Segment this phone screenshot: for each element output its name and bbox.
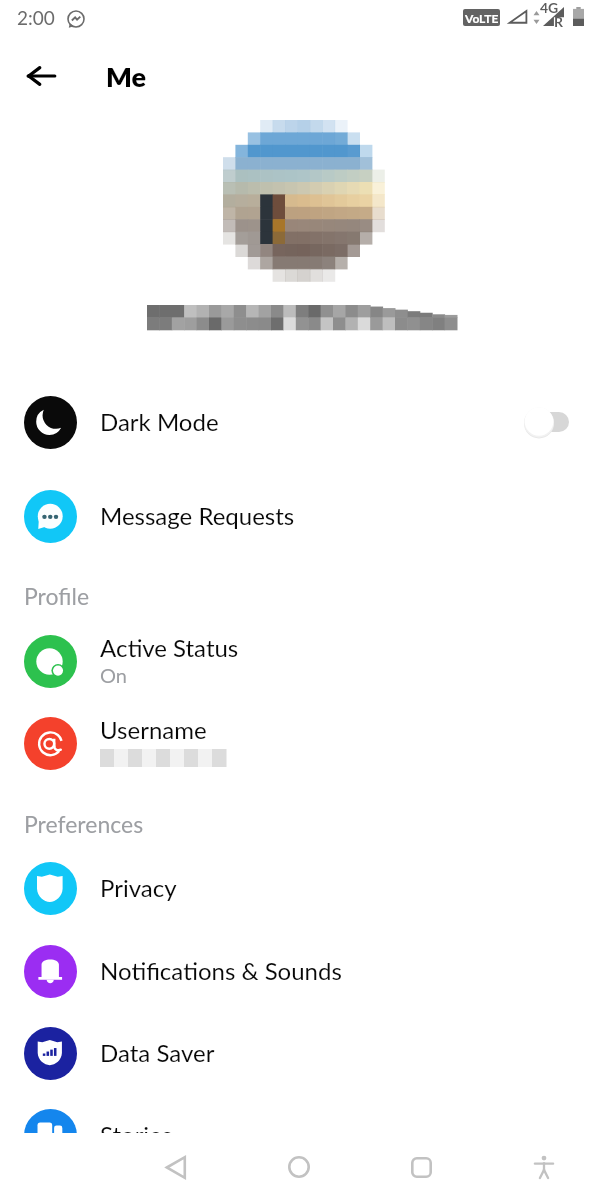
button[interactable]: Notifications & Sounds	[0, 930, 600, 1012]
staticText: On	[100, 663, 127, 687]
button[interactable]: Dark Mode	[0, 381, 600, 463]
staticText: Privacy	[100, 873, 177, 902]
button[interactable]: Privacy	[0, 847, 600, 929]
button[interactable]: Stories	[0, 1094, 600, 1176]
button[interactable]: Back	[15, 50, 67, 102]
button[interactable]: Accessibility	[516, 1139, 572, 1195]
staticText: Message Requests	[100, 501, 295, 530]
staticText: Data Saver	[100, 1038, 215, 1067]
staticText: Profile	[24, 582, 90, 610]
staticText: Me	[106, 60, 147, 92]
button[interactable]: Back	[148, 1139, 204, 1195]
button[interactable]: Active Status	[0, 620, 600, 702]
staticText: VoLTE	[465, 11, 499, 25]
button[interactable]: Message Requests	[0, 475, 600, 557]
staticText: Username	[100, 715, 207, 744]
staticText: 2:00	[17, 6, 55, 29]
staticText: 4G	[540, 0, 559, 16]
button[interactable]: Data Saver	[0, 1012, 600, 1094]
staticText: Dark Mode	[100, 407, 219, 436]
button[interactable]: Dark Mode toggle	[522, 404, 572, 440]
staticText: Notifications & Sounds	[100, 956, 342, 985]
staticText: Active Status	[100, 633, 239, 662]
staticText: Stories	[100, 1120, 173, 1149]
staticText: R	[554, 13, 564, 30]
staticText: Preferences	[24, 810, 144, 838]
button[interactable]: Username	[0, 702, 600, 784]
button[interactable]: Recent apps	[393, 1139, 449, 1195]
button[interactable]: Home	[271, 1139, 327, 1195]
